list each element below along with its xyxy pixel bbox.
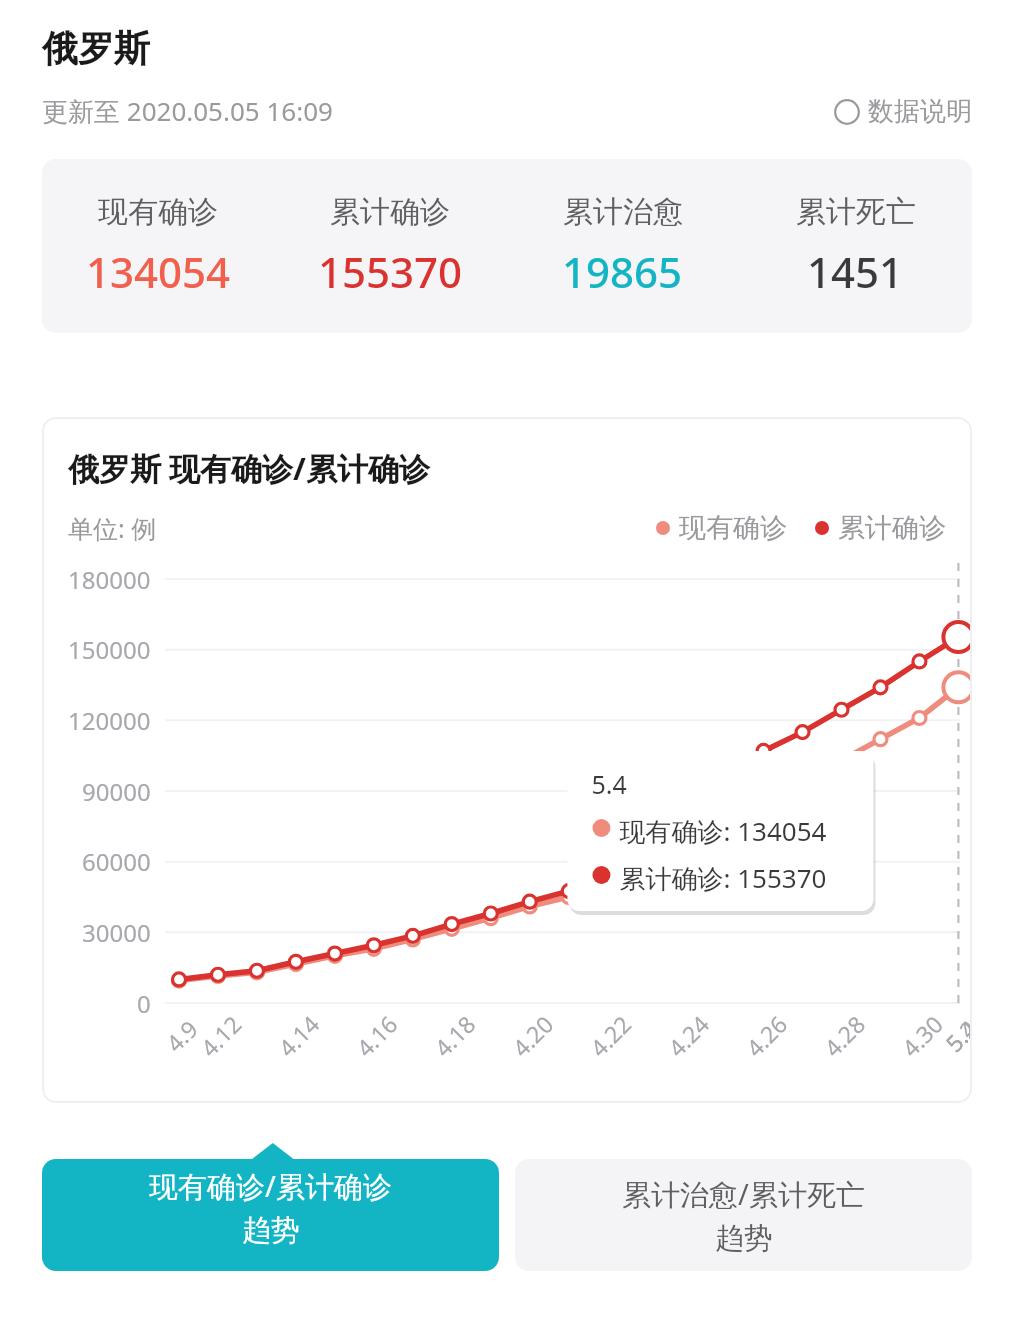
staticText: 累计确诊 xyxy=(838,511,946,545)
staticText: 现有确诊/累计确诊 xyxy=(149,1166,392,1206)
staticText: 更新至 2020.05.05 16:09 xyxy=(42,93,333,129)
staticText: 累计治愈/累计死亡 xyxy=(622,1174,865,1214)
staticText: 俄罗斯 现有确诊/累计确诊 xyxy=(68,447,430,489)
staticText: 累计死亡 xyxy=(796,193,916,231)
staticText: 趋势 xyxy=(715,1220,773,1257)
staticText: 数据说明 xyxy=(868,95,972,128)
button[interactable]: 数据说明 xyxy=(834,95,972,128)
staticText: 累计治愈 xyxy=(563,193,683,231)
button[interactable]: 现有确诊 xyxy=(42,193,274,300)
staticText: 155370 xyxy=(318,243,463,300)
button[interactable]: 累计治愈/累计死亡 xyxy=(515,1159,972,1271)
staticText: 现有确诊 xyxy=(679,511,787,545)
staticText: 趋势 xyxy=(242,1212,300,1249)
staticText: 134054 xyxy=(86,243,231,300)
button[interactable]: 累计确诊 xyxy=(274,193,506,300)
staticText: 俄罗斯 xyxy=(42,26,150,71)
staticText: 单位: 例 xyxy=(68,511,157,545)
button[interactable]: 累计治愈 xyxy=(506,193,739,300)
staticText: 现有确诊 xyxy=(98,193,218,231)
staticText: 1451 xyxy=(807,243,904,300)
button[interactable]: 累计死亡 xyxy=(739,193,972,300)
staticText: 19865 xyxy=(562,243,683,300)
button[interactable] xyxy=(42,1143,499,1271)
staticText: 累计确诊 xyxy=(330,193,450,231)
